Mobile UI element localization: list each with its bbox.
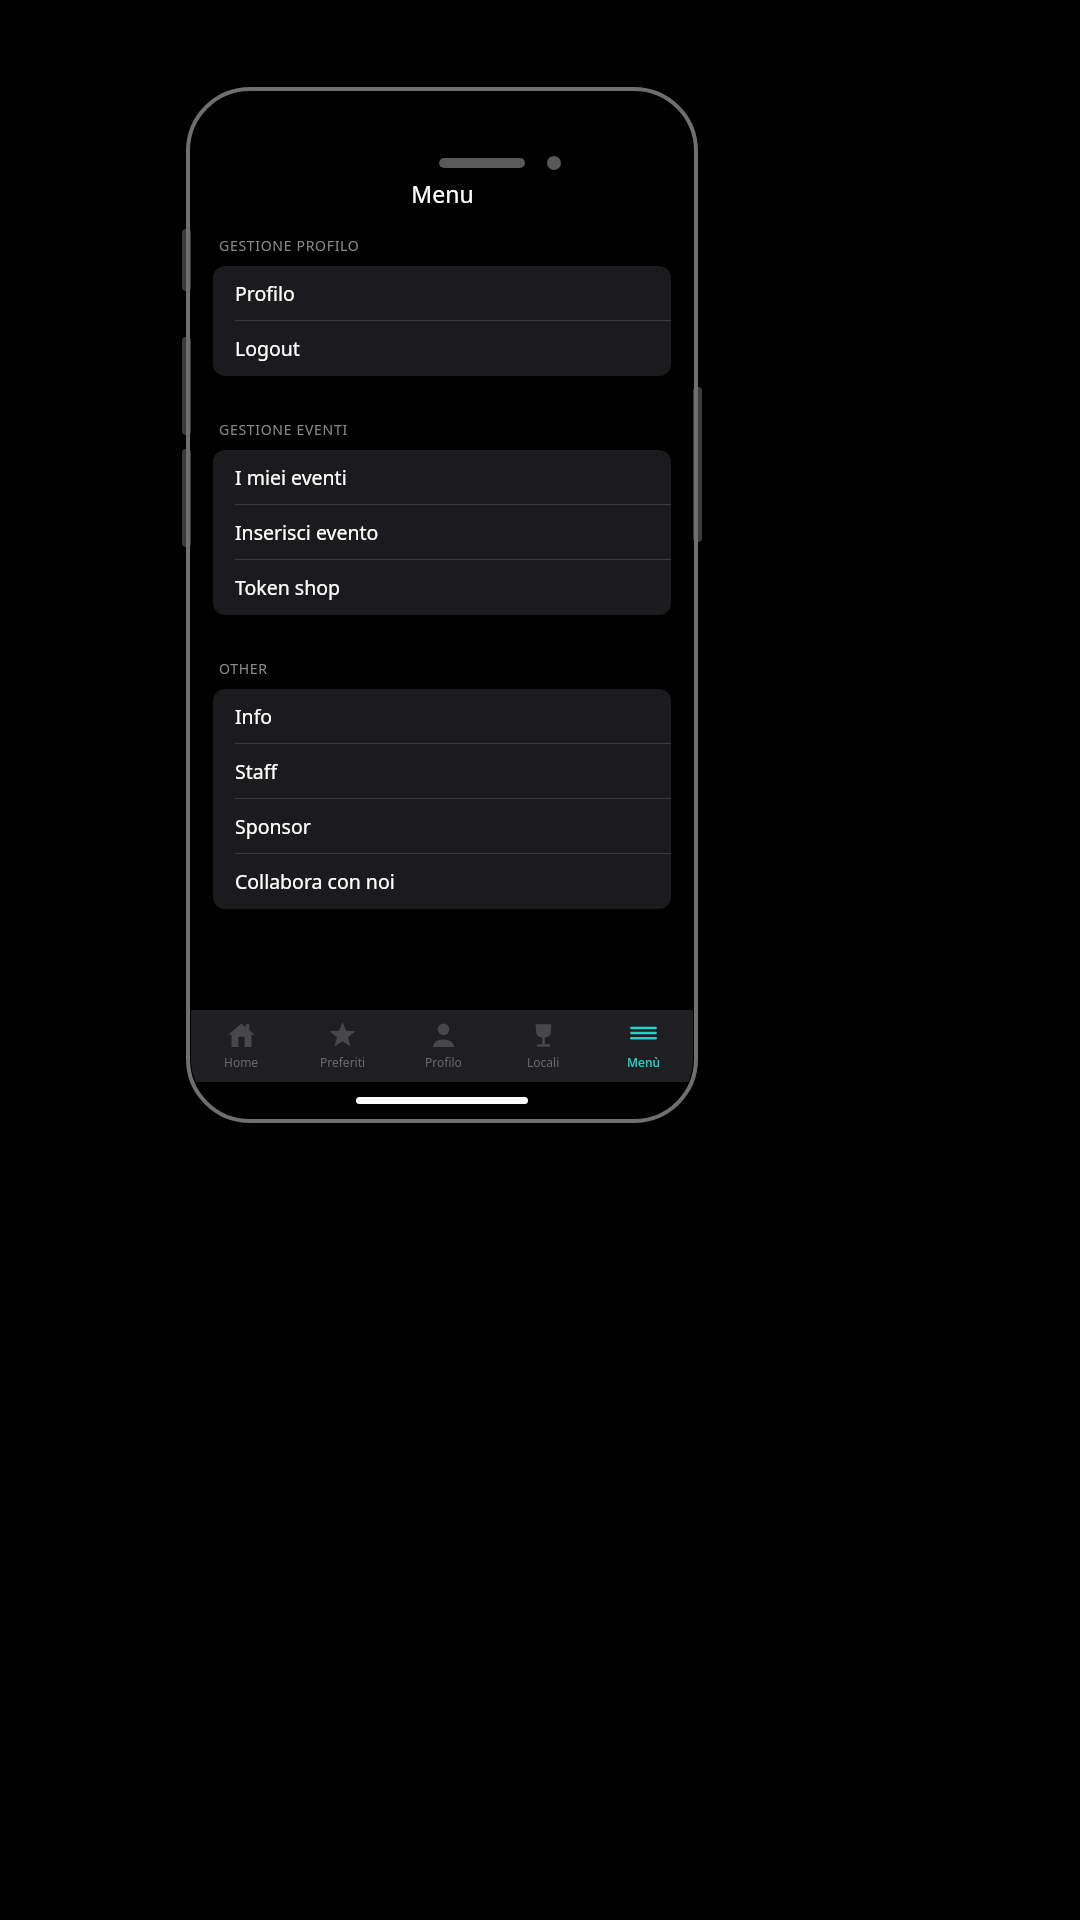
staticText: Token shop <box>235 574 340 601</box>
staticText: Profilo <box>235 280 295 307</box>
button[interactable]: Menù <box>593 1010 693 1082</box>
button[interactable]: Home <box>191 1010 292 1082</box>
staticText: Inserisci evento <box>235 519 379 546</box>
staticText: Locali <box>527 1054 560 1070</box>
staticText: Menù <box>627 1054 660 1070</box>
button[interactable]: Locali <box>493 1010 593 1082</box>
staticText: I miei eventi <box>235 464 347 491</box>
staticText: Menu <box>411 178 474 206</box>
staticText: Sponsor <box>235 813 311 840</box>
button[interactable]: Logout <box>213 321 671 376</box>
button[interactable]: Profilo <box>213 266 671 321</box>
staticText: Staff <box>235 758 278 785</box>
button[interactable]: Info <box>213 689 671 744</box>
staticText: Logout <box>235 335 300 362</box>
staticText: Collabora con noi <box>235 868 395 895</box>
staticText: GESTIONE EVENTI <box>219 420 348 439</box>
staticText: Profilo <box>425 1054 462 1070</box>
staticText: OTHER <box>219 659 268 678</box>
staticText: Home <box>224 1054 259 1070</box>
button[interactable]: Token shop <box>213 560 671 615</box>
button[interactable]: I miei eventi <box>213 450 671 505</box>
staticText: Preferiti <box>320 1054 366 1070</box>
button[interactable]: Inserisci evento <box>213 505 671 560</box>
staticText: GESTIONE PROFILO <box>219 236 360 255</box>
button[interactable]: Preferiti <box>292 1010 393 1082</box>
staticText: Info <box>235 703 273 730</box>
button[interactable]: Staff <box>213 744 671 799</box>
button[interactable]: Collabora con noi <box>213 854 671 909</box>
button[interactable]: Profilo <box>393 1010 493 1082</box>
button[interactable]: Sponsor <box>213 799 671 854</box>
